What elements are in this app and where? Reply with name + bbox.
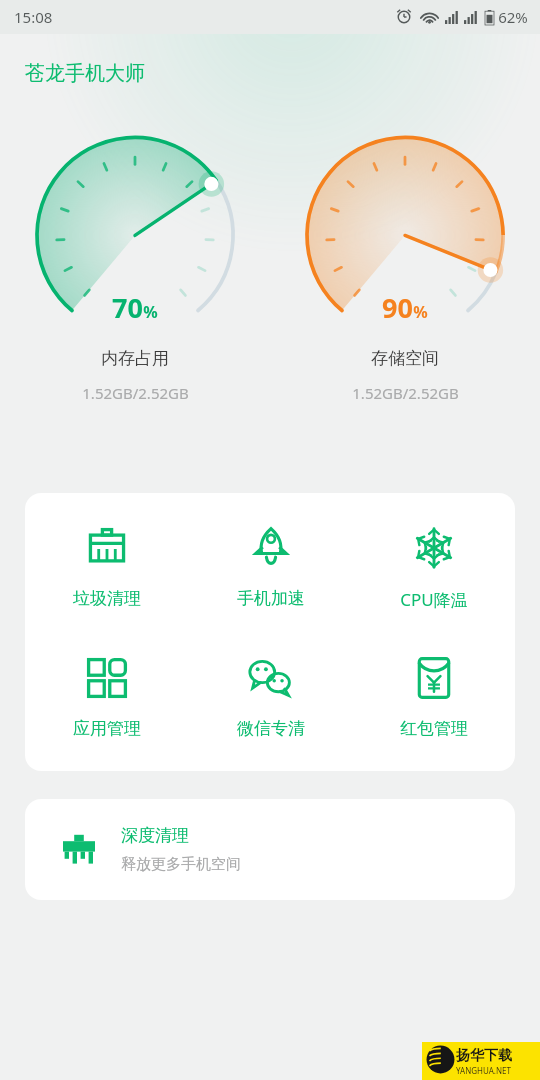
button[interactable]: 70 — [0, 132, 270, 403]
staticText: CPU降温 — [400, 588, 468, 611]
button[interactable]: 深度清理 — [25, 799, 515, 900]
staticText: 深度清理 — [121, 825, 189, 846]
staticText: 70 — [112, 289, 143, 326]
staticText: YANGHUA.NET — [456, 1065, 511, 1076]
staticText: 手机加速 — [237, 588, 305, 609]
staticText: 1.52GB/2.52GB — [82, 383, 189, 403]
staticText: 存储空间 — [371, 348, 439, 369]
staticText: 微信专清 — [237, 718, 305, 739]
staticText: 内存占用 — [101, 348, 169, 369]
staticText: 苍龙手机大师 — [25, 61, 145, 86]
staticText: % — [143, 301, 158, 323]
staticText: 62% — [498, 7, 528, 27]
button[interactable]: 微信专清 — [189, 651, 352, 743]
button[interactable]: 垃圾清理 — [25, 521, 189, 613]
other: yanghua.net watermark — [422, 1042, 540, 1080]
staticText: 15:08 — [14, 7, 53, 27]
staticText: 90 — [382, 289, 413, 326]
staticText: 释放更多手机空间 — [121, 855, 241, 874]
staticText: % — [413, 301, 428, 323]
button[interactable]: 红包管理 — [352, 651, 515, 743]
staticText: 垃圾清理 — [73, 588, 141, 609]
button[interactable]: 应用管理 — [25, 651, 189, 743]
staticText: 红包管理 — [400, 718, 468, 739]
staticText: 1.52GB/2.52GB — [352, 383, 459, 403]
staticText: 扬华下载 — [456, 1047, 512, 1065]
button[interactable]: CPU降温 — [352, 521, 515, 615]
button[interactable]: 90 — [270, 132, 540, 403]
button[interactable]: 手机加速 — [189, 521, 352, 613]
staticText: 应用管理 — [73, 718, 141, 739]
